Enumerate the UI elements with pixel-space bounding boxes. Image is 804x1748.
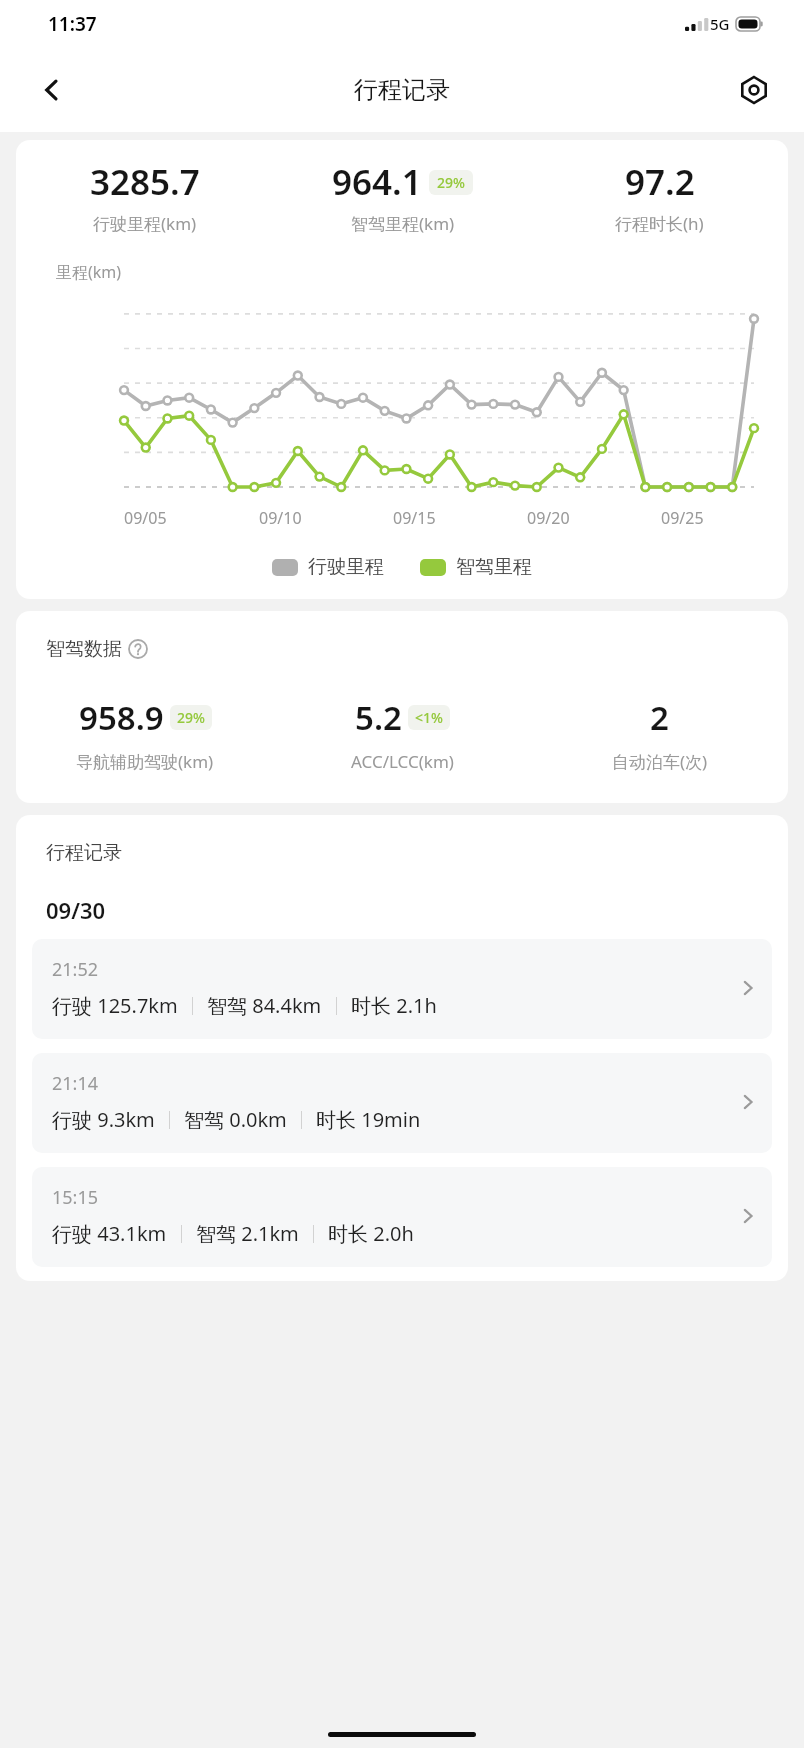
staticText: 15:15: [52, 1185, 99, 1210]
staticText: 导航辅助驾驶(km): [76, 750, 214, 773]
staticText: 09/30: [46, 895, 106, 925]
staticText: 行程记录: [46, 841, 122, 865]
staticText: 09/10: [259, 507, 302, 529]
staticText: 97.2: [625, 158, 695, 206]
staticText: 智驾 0.0km: [184, 1106, 287, 1133]
staticText: 行程记录: [354, 75, 450, 105]
button[interactable]: 智驾里程: [420, 555, 532, 579]
staticText: 智驾里程(km): [351, 212, 455, 235]
staticText: 智驾数据: [46, 637, 122, 661]
staticText: 行驶 125.7km: [52, 992, 178, 1019]
staticText: 29%: [177, 708, 205, 727]
staticText: 自动泊车(次): [612, 750, 708, 773]
staticText: 行驶里程(km): [93, 212, 197, 235]
staticText: ACC/LCC(km): [351, 750, 454, 773]
staticText: 智驾 2.1km: [196, 1220, 299, 1247]
button[interactable]: 行驶里程: [272, 555, 384, 579]
staticText: 958.9: [79, 695, 164, 740]
button[interactable]: Settings: [730, 66, 778, 114]
staticText: 智驾 84.4km: [207, 992, 322, 1019]
staticText: 智驾里程: [456, 555, 532, 579]
staticText: 行驶 43.1km: [52, 1220, 167, 1247]
staticText: 时长 19min: [316, 1106, 421, 1133]
staticText: 5.2: [355, 695, 402, 740]
staticText: <1%: [415, 708, 443, 727]
staticText: 21:52: [52, 957, 99, 982]
staticText: 964.1: [332, 158, 422, 206]
staticText: 09/05: [124, 507, 167, 529]
staticText: 09/20: [527, 507, 570, 529]
staticText: 09/15: [393, 507, 436, 529]
staticText: 行驶 9.3km: [52, 1106, 155, 1133]
staticText: 11:37: [48, 11, 97, 37]
staticText: 行驶里程: [308, 555, 384, 579]
button[interactable]: 21:14: [32, 1053, 772, 1153]
staticText: 09/25: [661, 507, 704, 529]
button[interactable]: 15:15: [32, 1167, 772, 1267]
staticText: 5G: [710, 14, 730, 34]
staticText: 3285.7: [90, 158, 200, 206]
staticText: 2: [650, 695, 669, 740]
staticText: 行程时长(h): [615, 212, 704, 235]
button[interactable]: Back: [28, 66, 76, 114]
staticText: 时长 2.1h: [351, 992, 437, 1019]
button[interactable]: Help: [128, 639, 148, 659]
button[interactable]: 21:52: [32, 939, 772, 1039]
staticText: 时长 2.0h: [328, 1220, 414, 1247]
staticText: 里程(km): [56, 261, 122, 283]
staticText: 29%: [437, 173, 465, 192]
staticText: 21:14: [52, 1071, 99, 1096]
